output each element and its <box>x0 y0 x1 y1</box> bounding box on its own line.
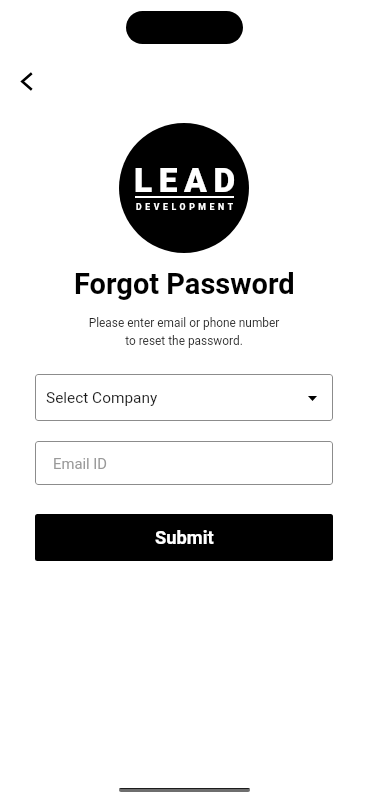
button[interactable]: Email ID <box>35 441 333 485</box>
staticText: Submit <box>155 527 214 548</box>
staticText: DEVELOPMENT <box>136 202 237 212</box>
staticText: Forgot Password <box>74 267 295 301</box>
staticText: LEAD <box>134 161 242 200</box>
staticText: Email ID <box>53 455 108 472</box>
button[interactable]: Back <box>7 61 47 101</box>
button[interactable]: Select Company <box>35 374 333 421</box>
button[interactable]: Submit <box>35 514 333 561</box>
staticText: Select Company <box>46 389 158 407</box>
staticText: Please enter email or phone number to re… <box>0 316 368 348</box>
